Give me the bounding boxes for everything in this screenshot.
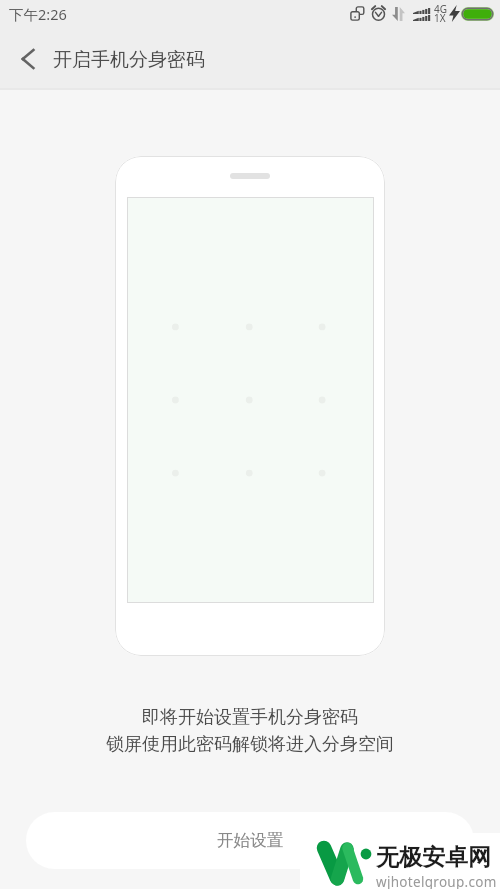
staticText: 4G (434, 2, 447, 16)
staticText: 开始设置 (217, 830, 283, 851)
staticText: 即将开始设置手机分身密码 (142, 706, 358, 729)
staticText: 1X (434, 11, 446, 25)
button[interactable]: Back (0, 28, 56, 88)
button[interactable]: 开始设置 (26, 812, 474, 869)
staticText: 锁屏使用此密码解锁将进入分身空间 (106, 733, 394, 756)
staticText: 开启手机分身密码 (53, 48, 205, 72)
staticText: wjhotelgroup.com (376, 873, 497, 889)
staticText: 无极安卓网 (376, 843, 491, 872)
staticText: 下午2:26 (9, 4, 67, 24)
